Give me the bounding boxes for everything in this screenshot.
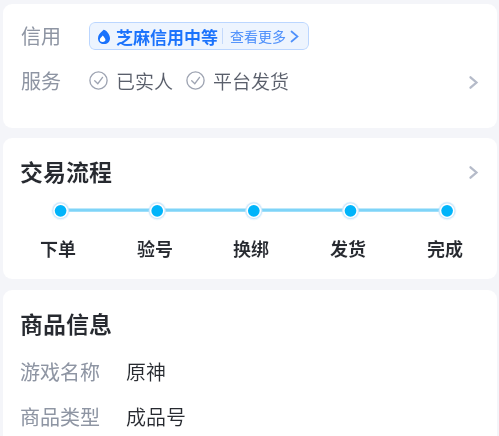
staticText: 服务 (21, 66, 61, 95)
staticText: 下单 (23, 235, 93, 261)
button[interactable]: 商品类型 (3, 398, 497, 434)
staticText: 信用 (21, 21, 61, 50)
button[interactable]: 交易流程 (3, 138, 497, 198)
other: 查看更多 (289, 29, 300, 44)
other: 查看服务保障 (468, 75, 479, 90)
button[interactable]: 芝麻信用中等 (89, 22, 309, 50)
staticText: 平台发货 (213, 67, 290, 95)
staticText: 成品号 (126, 402, 186, 431)
button[interactable]: 服务 (3, 58, 497, 103)
staticText: 已实人 (116, 67, 174, 95)
staticText: 完成 (410, 235, 480, 261)
staticText: 商品信息 (20, 306, 112, 339)
staticText: 发货 (313, 235, 383, 261)
staticText: 换绑 (216, 235, 286, 261)
staticText: 查看更多 (230, 26, 286, 46)
staticText: 原神 (126, 357, 166, 386)
staticText: 芝麻信用中等 (116, 24, 218, 49)
other: 查看交易流程 (468, 165, 479, 180)
staticText: 交易流程 (20, 154, 112, 187)
staticText: 验号 (120, 235, 190, 261)
staticText: 游戏名称 (20, 357, 100, 386)
button[interactable]: 游戏名称 (3, 353, 497, 389)
button[interactable]: 信用 (3, 13, 497, 58)
staticText: 商品类型 (20, 402, 100, 431)
